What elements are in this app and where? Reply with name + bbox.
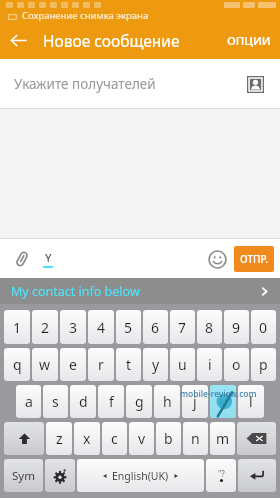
staticText: h (163, 392, 172, 411)
button[interactable]: My contact info below (0, 278, 280, 304)
button[interactable]: 8 (197, 310, 222, 344)
button[interactable]: Add recipient (242, 71, 268, 97)
button[interactable]: b (156, 422, 181, 455)
button[interactable]: f (98, 385, 124, 418)
staticText: z (56, 429, 63, 448)
button[interactable]: 4 (88, 310, 114, 344)
button[interactable]: 5 (116, 310, 141, 344)
staticText: 9 (232, 318, 241, 337)
button[interactable]: c (102, 422, 127, 455)
button[interactable]: Symbols (4, 459, 43, 492)
staticText: ОПЦИИ (227, 33, 271, 49)
staticText: 6 (151, 318, 160, 337)
button[interactable]: z (46, 422, 72, 455)
button[interactable]: Space (77, 459, 204, 492)
button[interactable]: y (143, 348, 168, 381)
button[interactable]: n (183, 422, 208, 455)
staticText: My contact info below (11, 283, 140, 300)
staticText: "? (218, 468, 225, 479)
staticText: d (79, 392, 88, 411)
button[interactable]: x (74, 422, 100, 455)
button[interactable]: k (210, 385, 236, 418)
button[interactable]: w (32, 348, 58, 381)
staticText: x (83, 429, 91, 448)
button[interactable]: j (182, 385, 208, 418)
staticText: y (152, 355, 160, 374)
staticText: o (232, 355, 241, 374)
button[interactable]: 1 (4, 310, 30, 344)
staticText: w (39, 355, 51, 374)
staticText: l (249, 392, 253, 411)
button[interactable]: Text style (36, 245, 60, 273)
staticText: Укажите получателей (14, 75, 156, 93)
staticText: 8 (205, 318, 214, 337)
button[interactable]: Back (0, 22, 37, 59)
staticText: a (25, 392, 33, 411)
button[interactable]: s (43, 385, 68, 418)
staticText: mobile-review.com (180, 388, 257, 400)
button[interactable]: e (60, 348, 86, 381)
staticText: 3 (69, 318, 78, 337)
staticText: 7 (178, 318, 187, 337)
staticText: p (259, 355, 268, 374)
staticText: b (164, 429, 173, 448)
staticText: Sym (12, 468, 35, 484)
staticText: 5 (124, 318, 133, 337)
staticText: v (138, 429, 146, 448)
button[interactable]: 2 (32, 310, 58, 344)
button[interactable]: o (224, 348, 249, 381)
staticText: c (111, 429, 118, 448)
button[interactable]: p (251, 348, 276, 381)
button[interactable]: Period (206, 459, 236, 492)
staticText: t (126, 355, 132, 374)
button[interactable]: ОПЦИИ (218, 22, 280, 59)
button[interactable]: g (126, 385, 152, 418)
staticText: Y (45, 250, 52, 265)
staticText: q (13, 355, 22, 374)
button[interactable]: h (154, 385, 180, 418)
button[interactable]: 3 (60, 310, 86, 344)
button[interactable]: Settings (45, 459, 75, 492)
staticText: g (135, 392, 144, 411)
button[interactable]: 9 (224, 310, 249, 344)
button[interactable]: Attach (8, 245, 36, 273)
button[interactable]: 6 (143, 310, 168, 344)
staticText: f (109, 392, 114, 411)
staticText: Новое сообщение (43, 30, 180, 51)
staticText: r (98, 355, 104, 374)
button[interactable]: i (197, 348, 222, 381)
staticText: n (191, 429, 200, 448)
button[interactable]: q (4, 348, 30, 381)
button[interactable]: u (170, 348, 195, 381)
button[interactable]: d (70, 385, 96, 418)
button[interactable]: m (210, 422, 235, 455)
staticText: 0 (259, 318, 268, 337)
staticText: English(UK) (112, 469, 169, 483)
staticText: e (69, 355, 77, 374)
staticText: m (216, 429, 230, 448)
staticText: u (178, 355, 187, 374)
staticText: Сохранение снимка экрана (22, 9, 149, 22)
staticText: 2 (41, 318, 50, 337)
button[interactable]: ОТПР. (234, 246, 274, 272)
staticText: k (219, 392, 227, 411)
button[interactable]: Backspace (237, 422, 276, 455)
button[interactable]: a (16, 385, 41, 418)
staticText: 4 (97, 318, 106, 337)
button[interactable]: l (238, 385, 264, 418)
button[interactable]: Emoji (202, 244, 232, 274)
button[interactable]: v (129, 422, 154, 455)
staticText: s (52, 392, 59, 411)
button[interactable]: Shift (4, 422, 44, 455)
button[interactable]: 7 (170, 310, 195, 344)
staticText: ОТПР. (240, 252, 269, 266)
staticText: j (193, 392, 197, 411)
staticText: 1 (13, 318, 22, 337)
button[interactable]: 0 (251, 310, 276, 344)
button[interactable]: Enter (238, 459, 276, 492)
button[interactable]: t (116, 348, 141, 381)
staticText: i (208, 355, 212, 374)
button[interactable]: r (88, 348, 114, 381)
